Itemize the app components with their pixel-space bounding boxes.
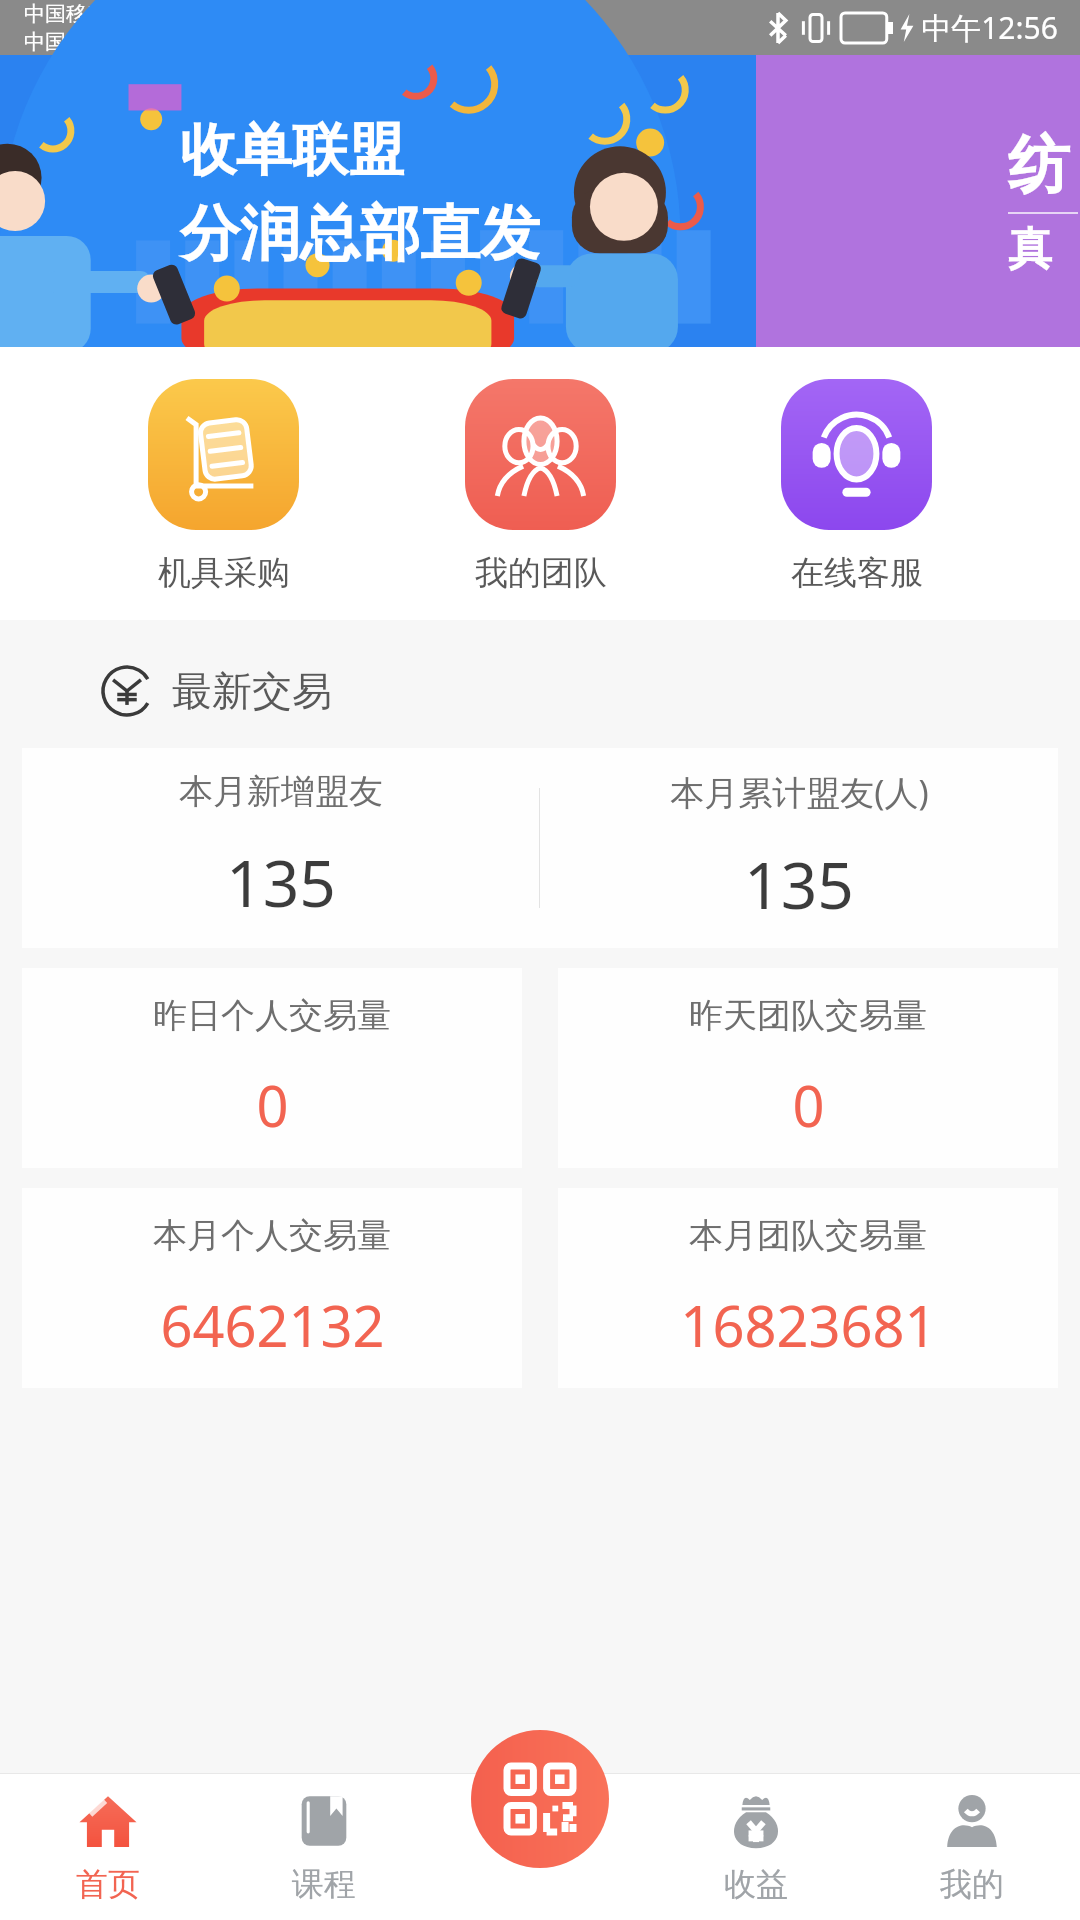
staticText: 首页 <box>76 1864 140 1904</box>
staticText: 6462132 <box>160 1287 385 1363</box>
button[interactable]: 机具采购 <box>130 379 317 594</box>
staticText: 0 <box>792 1067 825 1143</box>
staticText: 我的 <box>940 1864 1004 1904</box>
staticText: 课程 <box>292 1864 356 1904</box>
staticText: 135 <box>744 841 854 928</box>
staticText: 本月新增盟友 <box>179 770 383 813</box>
button[interactable]: 在线客服 <box>763 379 950 594</box>
button[interactable]: 收益 <box>648 1774 864 1920</box>
staticText: 中国移动 <box>24 1 108 27</box>
staticText: 收益 <box>724 1864 788 1904</box>
staticText: 纺 <box>1008 126 1070 204</box>
staticText: 16823681 <box>680 1287 937 1363</box>
staticText: 分润总部直发 <box>180 196 540 272</box>
button[interactable]: 课程 <box>216 1774 432 1920</box>
staticText: 真 <box>1008 222 1052 277</box>
button[interactable]: 我的团队 <box>447 379 634 594</box>
button[interactable]: 昨天团队交易量 <box>558 968 1058 1168</box>
staticText: 中国电信 <box>24 29 108 55</box>
button[interactable]: 本月团队交易量 <box>558 1188 1058 1388</box>
staticText: 本月团队交易量 <box>689 1214 927 1257</box>
staticText: 0 <box>256 1067 289 1143</box>
staticText: 收单联盟 <box>180 115 404 186</box>
staticText: 我的团队 <box>475 552 607 594</box>
button[interactable]: 昨日个人交易量 <box>22 968 522 1168</box>
staticText: 本月累计盟友(人) <box>670 769 929 815</box>
staticText: 135 <box>226 839 336 926</box>
staticText: 最新交易 <box>172 666 332 716</box>
staticText: 本月个人交易量 <box>153 1214 391 1257</box>
staticText: 昨日个人交易量 <box>153 994 391 1037</box>
button[interactable]: 纺 <box>0 55 1080 347</box>
button[interactable]: 首页 <box>0 1774 216 1920</box>
staticText: 中午12:56 <box>921 7 1058 48</box>
button[interactable]: 本月新增盟友 <box>22 748 1058 948</box>
staticText: 在线客服 <box>791 552 923 594</box>
button[interactable]: 本月个人交易量 <box>22 1188 522 1388</box>
button[interactable]: 我的 <box>864 1774 1080 1920</box>
button[interactable]: 扫一扫 <box>471 1730 609 1868</box>
staticText: 昨天团队交易量 <box>689 994 927 1037</box>
staticText: 机具采购 <box>158 552 290 594</box>
